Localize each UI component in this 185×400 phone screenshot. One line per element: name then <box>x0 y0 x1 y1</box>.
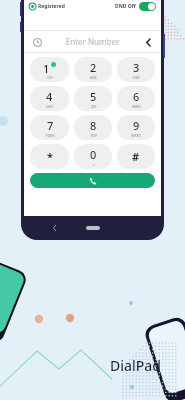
staticText: 5 <box>90 89 97 104</box>
staticText: 0 <box>90 147 97 162</box>
staticText: # <box>132 149 140 164</box>
staticText: DND Off <box>115 3 136 10</box>
staticText: DialPad <box>110 356 162 375</box>
button[interactable]: DND Off <box>115 2 156 11</box>
button[interactable]: 4 <box>30 86 69 111</box>
staticText: 6 <box>133 89 140 104</box>
button[interactable]: * <box>30 144 69 169</box>
staticText: + <box>92 162 95 167</box>
staticText: Enter Number <box>43 36 142 47</box>
button[interactable]: Backspace <box>142 36 154 48</box>
button[interactable]: 5 <box>74 86 112 111</box>
button[interactable]: Registered <box>29 3 65 10</box>
button[interactable]: 9 <box>117 115 155 140</box>
staticText: 8 <box>90 118 97 133</box>
button[interactable]: 1 <box>30 57 69 82</box>
button[interactable]: 8 <box>74 115 112 140</box>
staticText: DEF <box>133 75 140 80</box>
button[interactable]: 0 <box>74 144 112 169</box>
staticText: PQRS <box>45 133 55 138</box>
staticText: TUV <box>90 133 97 138</box>
staticText: 1 <box>43 61 50 76</box>
staticText: 9 <box>133 118 140 133</box>
staticText: MNO <box>132 104 141 109</box>
button[interactable]: Call <box>30 173 155 188</box>
staticText: Registered <box>38 3 65 10</box>
button[interactable]: 2 <box>74 57 112 82</box>
staticText: WXYZ <box>131 133 141 138</box>
staticText: GHI <box>46 104 53 109</box>
staticText: JKL <box>91 104 97 109</box>
button[interactable]: Call history <box>31 36 43 48</box>
button[interactable]: 6 <box>117 86 155 111</box>
staticText: 4 <box>46 89 53 104</box>
staticText: 7 <box>47 118 54 133</box>
staticText: * <box>47 149 53 164</box>
staticText: 3 <box>133 60 140 75</box>
button[interactable]: 7 <box>30 115 69 140</box>
staticText: ABC <box>90 75 97 80</box>
staticText: 2 <box>90 60 97 75</box>
button[interactable]: # <box>117 144 155 169</box>
button[interactable]: 3 <box>117 57 155 82</box>
